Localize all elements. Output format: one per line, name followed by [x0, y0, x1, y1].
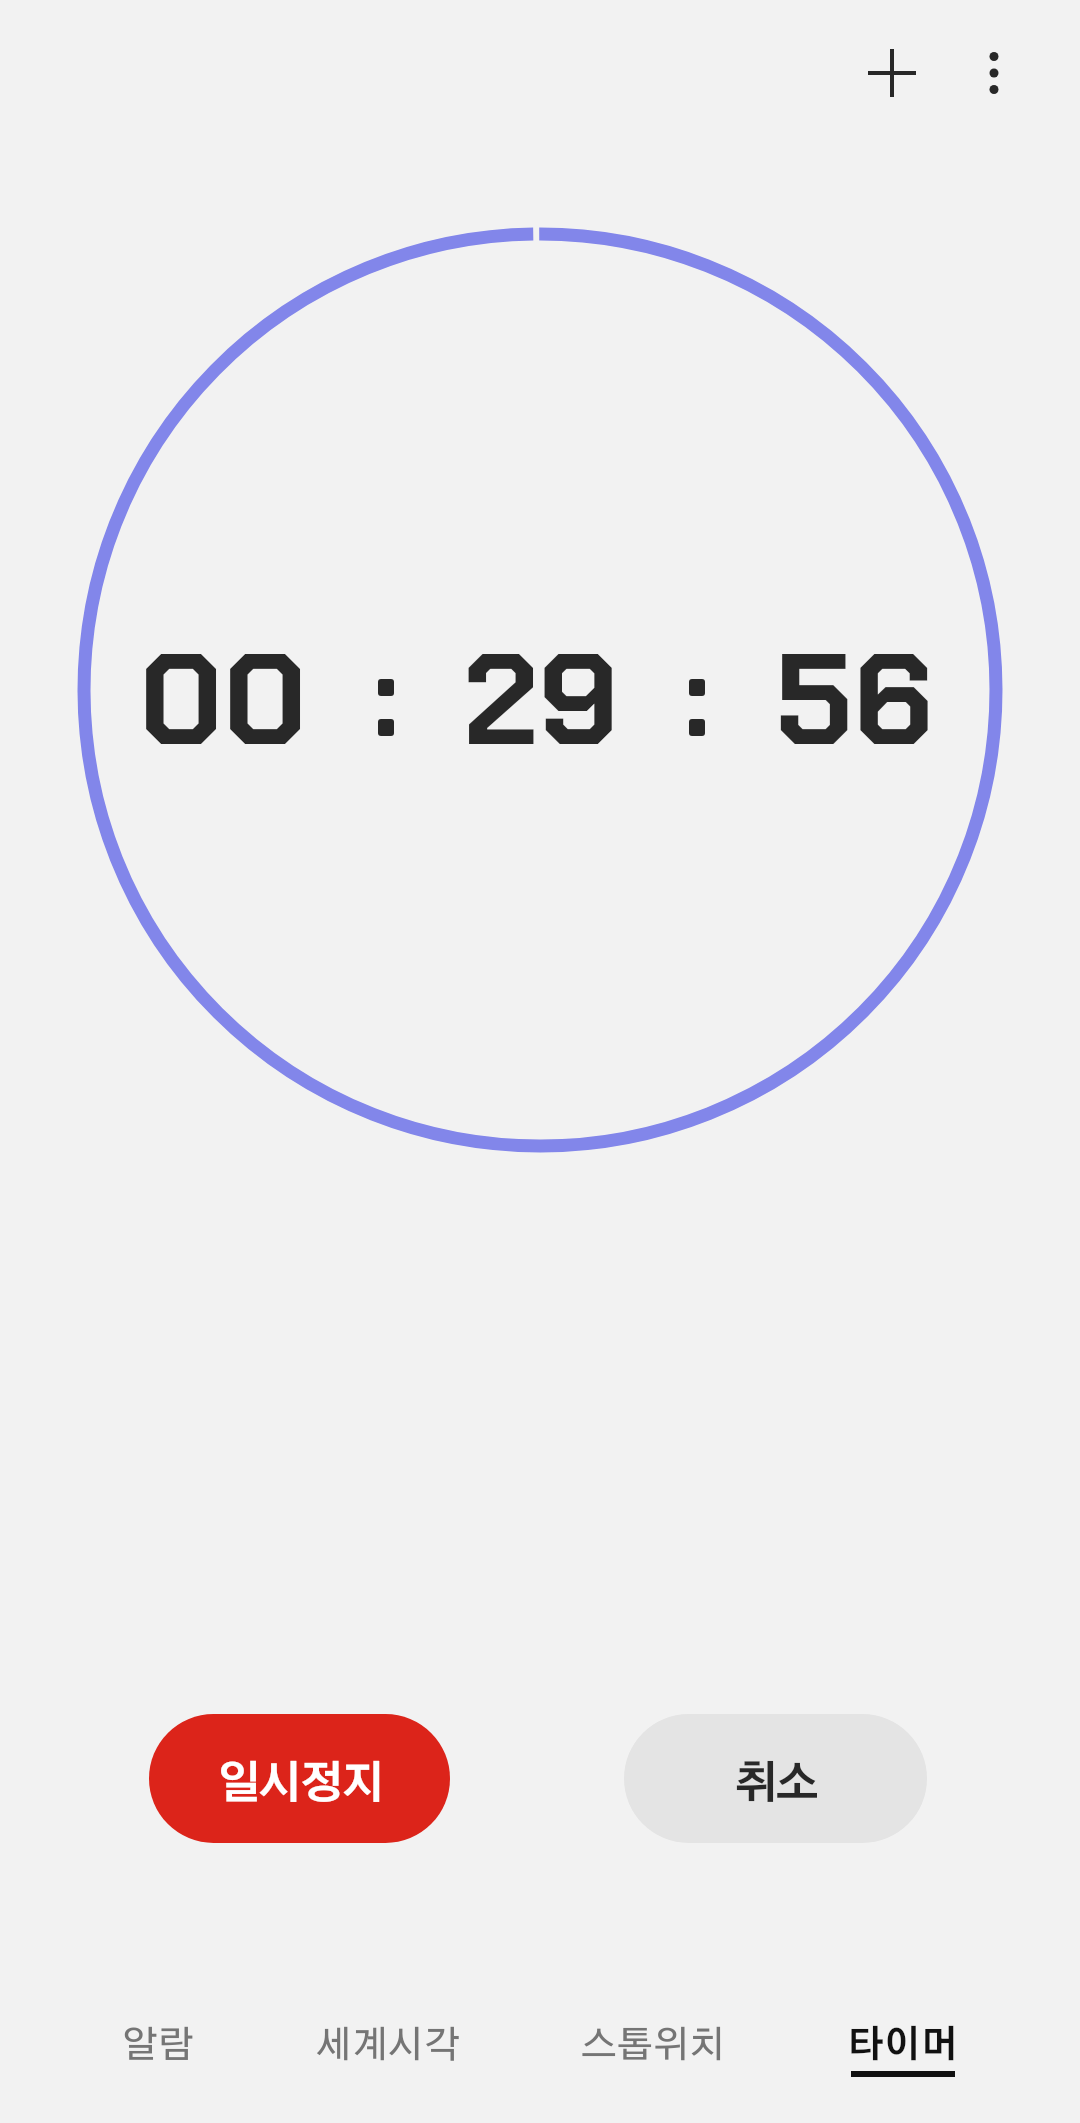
staticText: 타이머	[847, 2027, 958, 2064]
button[interactable]: 세계시각	[316, 2027, 460, 2064]
staticText: 00	[139, 616, 308, 784]
button[interactable]: 알람	[122, 2027, 194, 2064]
button[interactable]: 타이머	[847, 2027, 958, 2077]
staticText: 스톱위치	[581, 2027, 725, 2064]
staticText: 알람	[122, 2027, 194, 2064]
button[interactable]: 취소	[624, 1714, 927, 1843]
button[interactable]	[844, 25, 940, 121]
staticText: 29	[464, 616, 619, 784]
button[interactable]: 스톱위치	[581, 2027, 725, 2064]
button[interactable]	[946, 25, 1042, 121]
staticText: 일시정지	[217, 1763, 383, 1807]
staticText: 56	[775, 616, 934, 784]
button[interactable]: 일시정지	[149, 1714, 450, 1843]
staticText: 취소	[734, 1763, 817, 1807]
staticText: 세계시각	[316, 2027, 460, 2064]
